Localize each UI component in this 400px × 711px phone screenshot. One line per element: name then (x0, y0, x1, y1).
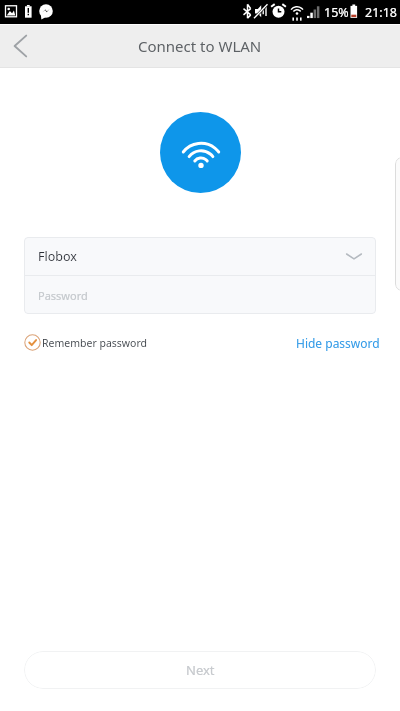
staticText: Password (38, 288, 88, 303)
button[interactable]: Back (0, 25, 42, 67)
staticText: Hide password (296, 335, 380, 351)
staticText: 21:18 (365, 4, 397, 21)
button[interactable]: Remember password (24, 331, 148, 354)
staticText: 15% (324, 4, 349, 21)
staticText: Remember password (42, 336, 148, 350)
button[interactable]: Password (24, 276, 376, 314)
button[interactable]: Flobox (24, 237, 376, 275)
staticText: Next (186, 661, 215, 679)
button[interactable]: Hide password (296, 332, 380, 354)
staticText: Connect to WLAN (138, 36, 262, 56)
button[interactable]: Next (24, 651, 376, 689)
staticText: Flobox (38, 248, 77, 265)
